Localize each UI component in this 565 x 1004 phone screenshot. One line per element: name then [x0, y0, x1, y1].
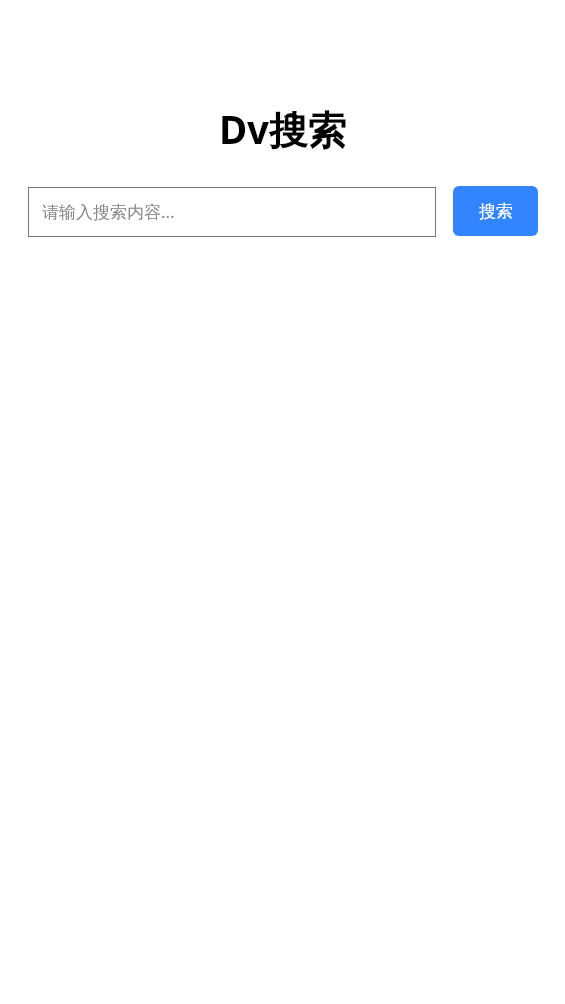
button[interactable]: 搜索输入框 — [28, 187, 436, 237]
staticText: Dv搜索 — [0, 103, 565, 156]
button[interactable]: 搜索 — [453, 186, 538, 236]
staticText: 搜索 — [479, 201, 513, 222]
staticText: 请输入搜索内容... — [42, 200, 175, 223]
